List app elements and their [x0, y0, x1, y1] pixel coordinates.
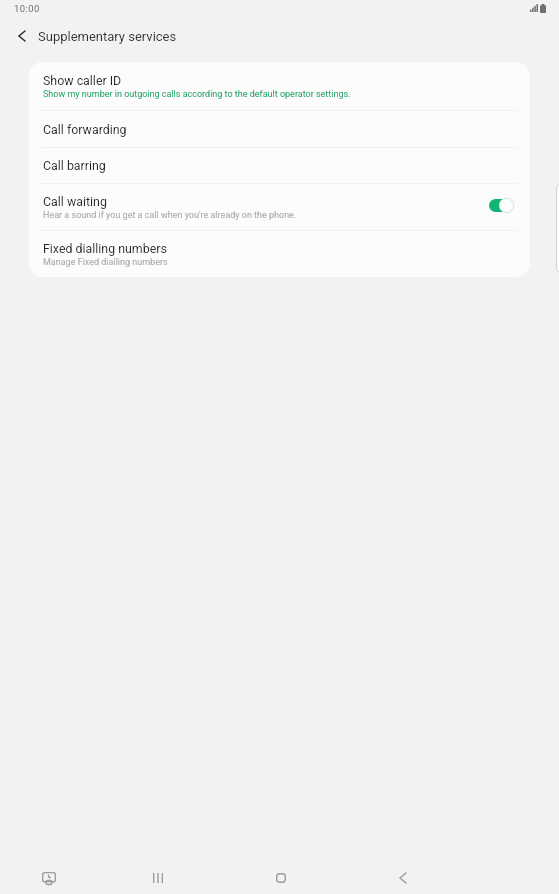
staticText: Show my number in outgoing calls accordi…: [43, 89, 351, 100]
button[interactable]: Recent apps: [134, 854, 182, 894]
staticText: Call barring: [43, 158, 106, 173]
button[interactable]: Call forwarding: [29, 111, 530, 147]
button[interactable]: Fixed dialling numbers: [29, 231, 530, 277]
button[interactable]: Call waiting on: [489, 197, 514, 218]
staticText: Show caller ID: [43, 73, 122, 88]
staticText: Supplementary services: [38, 29, 177, 44]
button[interactable]: Show caller ID: [29, 62, 530, 110]
button[interactable]: Hide keyboard: [25, 854, 73, 894]
staticText: Hear a sound if you get a call when you'…: [43, 210, 297, 221]
button[interactable]: Navigate up: [8, 22, 36, 50]
button[interactable]: Call barring: [29, 148, 530, 183]
staticText: 10:00: [14, 3, 40, 14]
button[interactable]: Call waiting: [29, 184, 530, 230]
staticText: Call waiting: [43, 194, 107, 209]
button[interactable]: Back: [379, 854, 427, 894]
staticText: Call forwarding: [43, 122, 127, 137]
staticText: Fixed dialling numbers: [43, 241, 167, 256]
button[interactable]: Home: [257, 854, 305, 894]
staticText: Manage Fixed dialling numbers: [43, 257, 168, 268]
